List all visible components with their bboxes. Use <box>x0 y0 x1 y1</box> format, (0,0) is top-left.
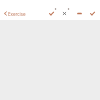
button[interactable]: Close <box>59 8 70 19</box>
staticText: Exercise <box>8 11 26 17</box>
button[interactable]: Done <box>87 8 98 19</box>
button[interactable]: Back <box>0 8 29 19</box>
button[interactable]: Remove <box>74 8 85 19</box>
other: Back <box>3 11 8 16</box>
button[interactable]: Accept <box>46 8 57 19</box>
